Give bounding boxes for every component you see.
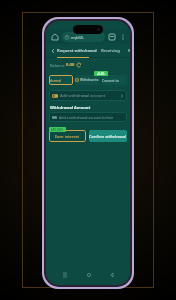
button[interactable]: Confirm withdrawal <box>89 130 127 142</box>
button[interactable]: Back <box>106 269 117 280</box>
button[interactable]: eqb68. <box>62 32 105 42</box>
staticText: APR 200% <box>51 128 64 132</box>
staticText: Convert to crypto <box>102 78 127 83</box>
button[interactable]: Add a withdrawal account before withdraw… <box>49 112 127 122</box>
staticText: Add a withdrawal account before withdraw… <box>59 115 124 120</box>
button[interactable]: Refresh balance <box>76 62 82 68</box>
button[interactable]: Withdraw to deposit <box>75 75 100 85</box>
staticText: eqb68. <box>71 35 84 40</box>
button[interactable]: Back <box>48 46 57 55</box>
staticText: Confirm withdrawal <box>89 134 127 139</box>
staticText: Withdraw to deposit <box>80 78 100 82</box>
button[interactable]: Convert to crypto <box>102 75 127 85</box>
staticText: Earn interest <box>55 134 80 139</box>
button[interactable]: Home <box>49 31 60 42</box>
button[interactable]: Receiving account <box>101 48 128 54</box>
staticText: Add withdrawal account <box>60 93 106 98</box>
staticText: Request withdrawal <box>57 48 97 54</box>
staticText: Normal withdrawal <box>49 78 73 83</box>
button[interactable]: Home <box>83 269 94 280</box>
staticText: Withdrawal Amount <box>50 105 91 110</box>
staticText: Balance <box>50 63 66 68</box>
button[interactable]: Earn interest <box>49 130 86 142</box>
button[interactable]: More options <box>118 32 127 41</box>
staticText: +0.5% <box>97 72 105 76</box>
staticText: 0.00 <box>66 62 75 68</box>
button[interactable]: Request withdrawal <box>57 48 97 54</box>
button[interactable]: Add withdrawal account <box>49 90 127 101</box>
button[interactable]: Normal withdrawal <box>49 75 73 85</box>
button[interactable]: Tabs <box>107 32 117 42</box>
button[interactable]: Recents <box>59 269 70 280</box>
